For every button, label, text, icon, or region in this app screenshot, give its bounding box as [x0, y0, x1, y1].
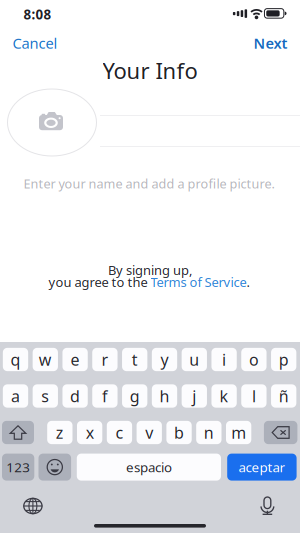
staticText: i [222, 349, 226, 370]
staticText: 123 [6, 458, 30, 476]
button[interactable]: 123 [2, 454, 34, 481]
button[interactable]: ñ [271, 384, 296, 408]
staticText: j [192, 385, 196, 407]
staticText: r [101, 349, 108, 370]
button[interactable]: Next [243, 30, 300, 56]
button[interactable]: Cancel [0, 30, 68, 56]
staticText: Cancel [12, 33, 57, 53]
button[interactable]: f [92, 384, 117, 408]
button[interactable]: c [107, 421, 132, 444]
staticText: v [145, 422, 153, 443]
staticText: w [39, 349, 52, 370]
staticText: s [41, 385, 49, 407]
button[interactable]: Dictate [260, 496, 275, 515]
staticText: aceptar [238, 458, 285, 476]
button[interactable]: t [122, 348, 147, 371]
button[interactable]: Backspace [264, 421, 297, 444]
button[interactable]: a [3, 384, 28, 408]
staticText: n [204, 422, 214, 443]
button[interactable]: n [196, 421, 221, 444]
button[interactable]: Add profile picture [7, 88, 97, 156]
staticText: h [159, 385, 169, 407]
button[interactable]: w [33, 348, 58, 371]
button[interactable]: s [33, 384, 58, 408]
staticText: e [71, 349, 80, 370]
button[interactable]: o [241, 348, 266, 371]
button[interactable]: v [137, 421, 162, 444]
button[interactable]: q [3, 348, 28, 371]
staticText: Enter your name and add a profile pictur… [23, 175, 274, 192]
staticText: o [249, 349, 259, 370]
staticText: t [132, 349, 138, 370]
staticText: q [10, 349, 20, 370]
button[interactable]: espacio [77, 454, 221, 481]
staticText: you agree to the [48, 273, 150, 291]
staticText: x [86, 422, 94, 443]
staticText: m [231, 422, 246, 443]
staticText: p [279, 349, 289, 370]
staticText: espacio [126, 458, 172, 476]
staticText: Next [253, 33, 287, 53]
button[interactable]: Terms of Service [150, 273, 246, 291]
button[interactable]: k [211, 384, 237, 408]
staticText: . [246, 273, 249, 291]
staticText: l [252, 385, 256, 407]
button[interactable]: h [152, 384, 177, 408]
button[interactable]: r [92, 348, 117, 371]
button[interactable]: Name [100, 90, 300, 116]
staticText: By signing up, [108, 261, 192, 279]
button[interactable]: x [77, 421, 102, 444]
staticText: a [11, 385, 20, 407]
staticText: Your Info [102, 55, 197, 85]
staticText: z [56, 422, 64, 443]
staticText: f [102, 385, 108, 407]
staticText: c [115, 422, 123, 443]
button[interactable]: z [47, 421, 72, 444]
staticText: 8:08 [23, 5, 51, 23]
staticText: g [130, 385, 140, 407]
button[interactable]: d [62, 384, 88, 408]
staticText: y [160, 349, 168, 370]
button[interactable]: p [271, 348, 296, 371]
button[interactable]: b [166, 421, 192, 444]
staticText: b [174, 422, 184, 443]
button[interactable]: i [211, 348, 237, 371]
button[interactable]: m [226, 421, 251, 444]
button[interactable]: Change keyboard [23, 497, 43, 514]
staticText: k [220, 385, 229, 407]
button[interactable]: u [182, 348, 207, 371]
button[interactable]: e [62, 348, 88, 371]
staticText: u [189, 349, 199, 370]
button[interactable]: j [182, 384, 207, 408]
button[interactable]: g [122, 384, 147, 408]
staticText: ñ [279, 385, 289, 407]
button[interactable]: l [241, 384, 266, 408]
button[interactable]: aceptar [227, 454, 297, 481]
button[interactable]: Shift [2, 421, 34, 444]
staticText: Terms of Service [150, 273, 246, 291]
button[interactable]: y [152, 348, 177, 371]
staticText: d [70, 385, 80, 407]
button[interactable]: Emoji [38, 454, 71, 481]
